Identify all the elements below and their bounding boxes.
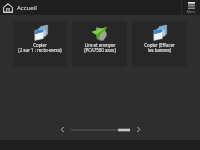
staticText: Accueil [17,4,37,12]
staticText: Copier (2 sur 1 : recto-verso) [18,42,62,53]
button[interactable]: Copier (2 sur 1 : recto-verso) [13,21,67,67]
staticText: Lire et envoyer (PCA7500 axxx) [84,42,116,53]
button[interactable]: Accueil [0,0,181,15]
button[interactable]: Menu [182,0,200,15]
button[interactable]: Copier (Effacer les bannes) [132,21,187,67]
button[interactable]: Lire et envoyer (PCA7500 axxx) [72,21,127,67]
button[interactable]: Next page [133,124,144,135]
button[interactable]: Previous page [57,124,68,135]
staticText: Menu [187,10,196,14]
staticText: Copier (Effacer les bannes) [144,42,175,53]
